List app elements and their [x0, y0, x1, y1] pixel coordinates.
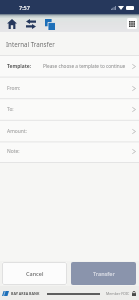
button[interactable]: Cancel	[2, 262, 67, 285]
staticText: 7:57	[19, 4, 30, 11]
button[interactable]: From:	[0, 77, 139, 99]
staticText: Amount:	[7, 128, 43, 135]
staticText: BAY AREA BANK	[11, 291, 40, 296]
staticText: Template:	[7, 63, 43, 70]
staticText: From:	[7, 85, 43, 92]
staticText: Internal Transfer	[6, 40, 55, 48]
button[interactable]: Amount:	[0, 120, 139, 142]
button[interactable]: Note:	[0, 141, 139, 162]
staticText: Cancel	[26, 270, 44, 277]
button[interactable]: Transfers	[21, 14, 40, 32]
button[interactable]: Home	[2, 14, 21, 32]
button[interactable]: To:	[0, 98, 139, 120]
staticText: To:	[7, 106, 43, 113]
staticText: Please choose a template to continue	[43, 63, 130, 69]
button[interactable]: Template:	[0, 55, 139, 77]
staticText: Transfer	[93, 270, 115, 277]
staticText: Member FDIC	[106, 291, 130, 296]
staticText: Note:	[7, 148, 43, 155]
button[interactable]: Menu	[125, 14, 139, 32]
button[interactable]: Payments	[40, 14, 59, 32]
button[interactable]: Transfer	[71, 262, 136, 285]
